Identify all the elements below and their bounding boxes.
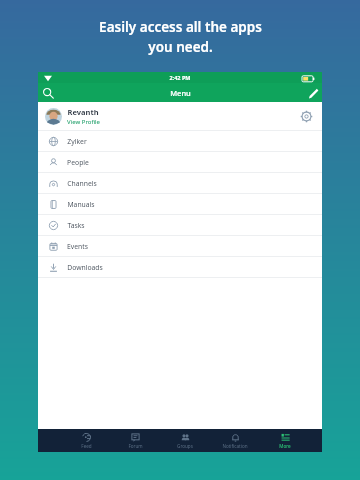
button[interactable]: Compose	[303, 83, 322, 102]
staticText: Revanth	[67, 107, 99, 117]
staticText: Events	[67, 242, 88, 251]
staticText: Manuals	[67, 200, 95, 209]
button[interactable]: Settings	[297, 107, 315, 125]
staticText: Feed	[81, 443, 92, 449]
staticText: Easily access all the apps	[99, 18, 262, 36]
button[interactable]: Notification	[210, 429, 260, 452]
staticText: Groups	[177, 443, 193, 449]
button[interactable]: Forum	[111, 429, 160, 452]
button[interactable]: Channels	[38, 173, 322, 193]
button[interactable]: More	[260, 429, 310, 452]
staticText: Downloads	[67, 263, 103, 272]
button[interactable]: Events	[38, 236, 322, 256]
staticText: you need.	[148, 38, 213, 56]
button[interactable]: Revanth	[38, 102, 322, 130]
button[interactable]: Groups	[160, 429, 210, 452]
staticText: People	[67, 158, 89, 167]
button[interactable]: Search	[38, 83, 57, 102]
button[interactable]: Tasks	[38, 215, 322, 235]
staticText: Notification	[222, 443, 248, 449]
staticText: Forum	[128, 443, 143, 449]
button[interactable]: Downloads	[38, 257, 322, 277]
button[interactable]: Feed	[62, 429, 111, 452]
staticText: 2:42 PM	[169, 74, 191, 81]
button[interactable]: Manuals	[38, 194, 322, 214]
button[interactable]: Zylker	[38, 131, 322, 151]
staticText: More	[279, 443, 291, 449]
button[interactable]: People	[38, 152, 322, 172]
staticText: Channels	[67, 179, 97, 188]
staticText: Zylker	[67, 137, 87, 146]
staticText: Menu	[170, 88, 191, 98]
staticText: Tasks	[67, 221, 85, 230]
staticText: View Profile	[67, 118, 100, 126]
